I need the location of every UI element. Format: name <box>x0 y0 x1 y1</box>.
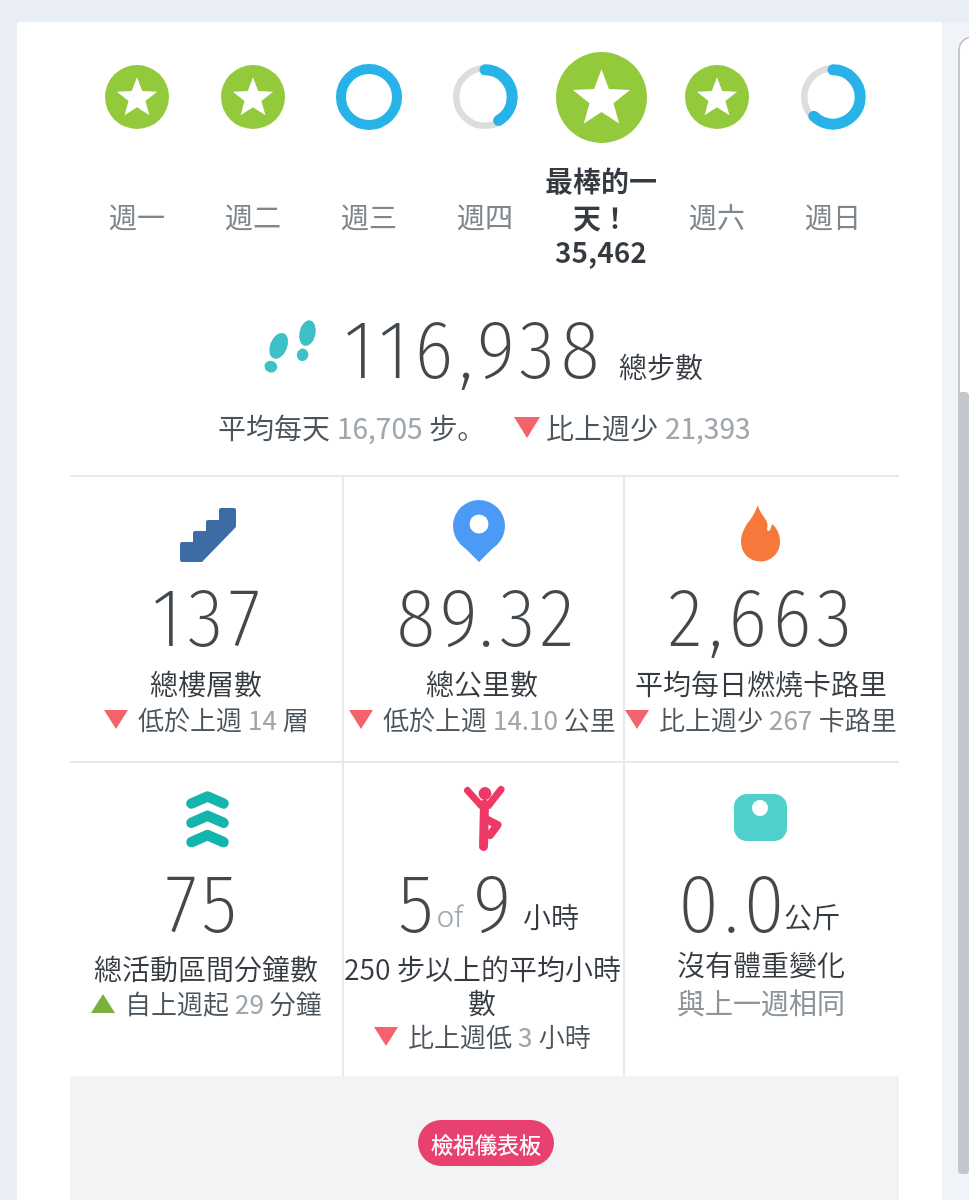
staticText: 89.32 <box>396 569 580 667</box>
staticText: 平均每天 <box>218 407 337 448</box>
staticText: 週日 <box>805 196 862 237</box>
staticText: 步。 <box>423 407 486 448</box>
staticText: 總活動區間分鐘數 <box>94 948 319 989</box>
staticText: 5 <box>398 855 434 953</box>
staticText: 公里 <box>558 700 616 738</box>
staticText: 14.10 <box>493 700 558 738</box>
staticText: 小時 <box>533 1017 591 1055</box>
staticText: 3 <box>518 1017 533 1055</box>
staticText: 最棒的一 <box>545 160 658 201</box>
staticText: 137 <box>152 569 266 667</box>
staticText: 週二 <box>225 196 282 237</box>
staticText: 29 <box>235 984 264 1022</box>
staticText: 21,393 <box>665 407 751 448</box>
staticText: 250 步以上的平均小時 <box>344 948 621 989</box>
staticText: 數 <box>468 982 497 1023</box>
staticText: 116,938 <box>344 301 606 399</box>
staticText: 14 <box>248 700 277 738</box>
staticText: 小時 <box>523 896 580 937</box>
staticText: 16,705 <box>337 407 423 448</box>
staticText: 總公里數 <box>426 663 539 704</box>
staticText: 卡路里 <box>813 700 897 738</box>
staticText: 週四 <box>457 196 514 237</box>
staticText: 總步數 <box>619 346 704 387</box>
staticText: 公斤 <box>784 896 841 937</box>
staticText: 週一 <box>109 196 166 237</box>
staticText: 週三 <box>341 196 398 237</box>
staticText: 沒有體重變化 <box>677 944 846 985</box>
staticText: 267 <box>769 700 813 738</box>
staticText: 總樓層數 <box>150 663 263 704</box>
staticText: 低於上週 <box>138 700 248 738</box>
staticText: 低於上週 <box>383 700 493 738</box>
staticText: 35,462 <box>555 231 647 272</box>
staticText: 比上週少 <box>546 407 665 448</box>
staticText: 2,663 <box>668 569 858 667</box>
staticText: 層 <box>277 700 309 738</box>
staticText: 平均每日燃燒卡路里 <box>635 663 888 704</box>
staticText: 分鐘 <box>264 984 322 1022</box>
staticText: 75 <box>165 855 243 953</box>
staticText: 自上週起 <box>125 984 235 1022</box>
staticText: 檢視儀表板 <box>431 1127 542 1159</box>
staticText: 與上一週相同 <box>677 982 846 1023</box>
staticText: 0.0 <box>678 855 791 953</box>
staticText: of <box>437 899 464 934</box>
staticText: 週六 <box>689 196 746 237</box>
staticText: 比上週低 <box>408 1017 518 1055</box>
staticText: 比上週少 <box>659 700 769 738</box>
staticText: 天！ <box>573 197 630 238</box>
staticText: 9 <box>473 855 512 953</box>
